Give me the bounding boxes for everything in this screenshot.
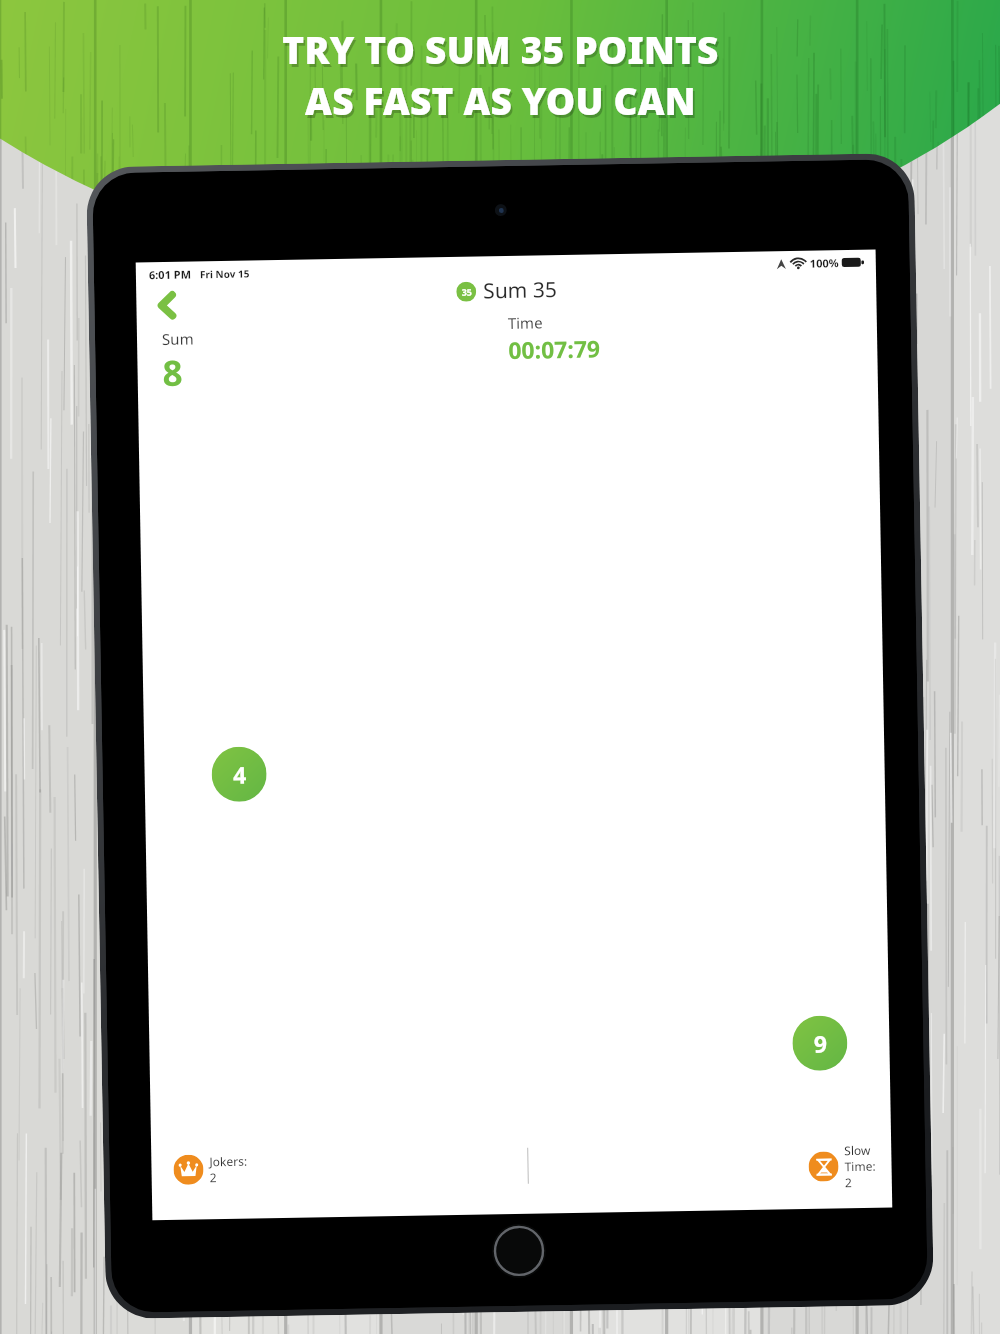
staticText: Slow	[844, 1142, 871, 1158]
staticText: Fri Nov 15	[200, 266, 250, 281]
staticText: Jokers:	[209, 1153, 247, 1169]
staticText: 8	[162, 349, 184, 397]
staticText: 00:07:79	[508, 332, 600, 365]
staticText: 2	[845, 1174, 852, 1190]
staticText: 100%	[810, 255, 839, 271]
staticText: 35	[461, 286, 472, 298]
button[interactable]: 9	[792, 1015, 848, 1071]
button[interactable]: Slow	[804, 1138, 880, 1195]
button[interactable]: 35	[456, 275, 557, 306]
staticText: Time	[508, 312, 543, 333]
staticText: Sum 35	[483, 275, 557, 305]
button[interactable]: Back	[144, 284, 187, 326]
staticText: AS FAST AS YOU CAN	[305, 75, 696, 125]
staticText: TRY TO SUM 35 POINTS	[284, 27, 721, 77]
staticText: Time:	[844, 1158, 876, 1174]
staticText: AS FAST AS YOU CAN	[307, 78, 698, 128]
staticText: Sum	[162, 328, 194, 349]
button[interactable]: 4	[211, 746, 267, 802]
staticText: 6:01 PM	[149, 266, 192, 282]
button[interactable]: Home	[491, 1223, 546, 1278]
staticText: 2	[209, 1169, 217, 1185]
staticText: 9	[813, 1027, 828, 1059]
staticText: TRY TO SUM 35 POINTS	[282, 24, 719, 74]
staticText: 4	[232, 759, 247, 790]
button[interactable]: Jokers:	[169, 1149, 252, 1190]
